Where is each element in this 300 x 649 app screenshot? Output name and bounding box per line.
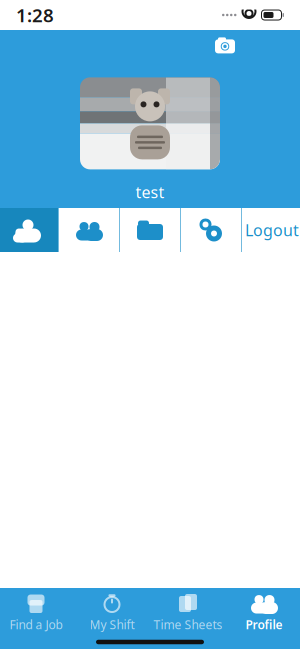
- button[interactable]: Take photo: [208, 31, 242, 61]
- staticText: Profile: [245, 616, 282, 632]
- button[interactable]: Logout: [242, 208, 300, 252]
- button[interactable]: Contacts: [59, 208, 119, 252]
- staticText: test: [135, 181, 164, 203]
- button[interactable]: Documents: [120, 208, 180, 252]
- staticText: My Shift: [89, 616, 134, 632]
- button[interactable]: Find a Job: [0, 586, 74, 636]
- staticText: Logout: [245, 219, 299, 241]
- button[interactable]: My Shift: [74, 586, 150, 636]
- staticText: Find a Job: [9, 616, 62, 632]
- button[interactable]: Time Sheets: [150, 586, 226, 636]
- staticText: Time Sheets: [153, 616, 222, 632]
- button[interactable]: Profile: [226, 586, 300, 636]
- button[interactable]: Settings: [181, 208, 241, 252]
- button[interactable]: Profile: [0, 208, 58, 252]
- staticText: 1:28: [16, 3, 54, 27]
